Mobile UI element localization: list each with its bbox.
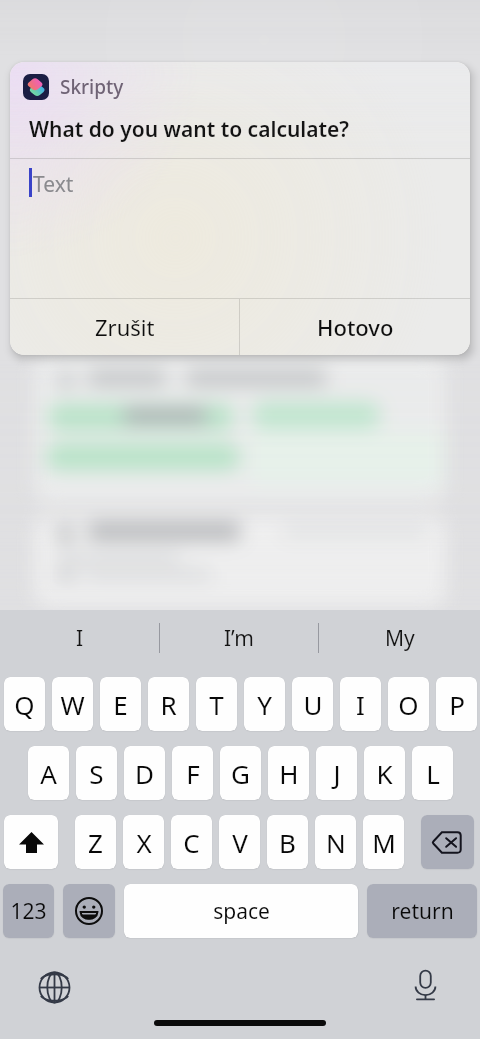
staticText: R xyxy=(160,687,177,722)
button[interactable]: T xyxy=(196,677,237,731)
staticText: L xyxy=(426,756,440,791)
button[interactable]: H xyxy=(268,746,309,800)
button[interactable]: P xyxy=(436,677,477,731)
button[interactable]: Y xyxy=(244,677,285,731)
staticText: W xyxy=(60,687,85,722)
button[interactable]: R xyxy=(148,677,189,731)
button[interactable]: 123 xyxy=(3,884,54,938)
button[interactable]: S xyxy=(76,746,117,800)
button[interactable]: C xyxy=(171,815,212,869)
staticText: I’m xyxy=(224,624,254,653)
button[interactable]: B xyxy=(267,815,308,869)
button[interactable]: K xyxy=(364,746,405,800)
button[interactable]: M xyxy=(363,815,404,869)
staticText: C xyxy=(183,825,200,860)
staticText: E xyxy=(113,687,128,722)
button[interactable]: X xyxy=(123,815,164,869)
button[interactable]: I xyxy=(0,610,159,666)
staticText: U xyxy=(303,687,323,722)
staticText: D xyxy=(135,756,154,791)
button[interactable]: D xyxy=(124,746,165,800)
staticText: F xyxy=(186,756,200,791)
staticText: My xyxy=(385,624,415,653)
staticText: J xyxy=(333,756,341,791)
staticText: I xyxy=(76,624,84,653)
staticText: K xyxy=(376,756,393,791)
button[interactable]: V xyxy=(219,815,260,869)
button[interactable]: L xyxy=(412,746,453,800)
staticText: Y xyxy=(257,687,272,722)
button[interactable]: Dictation xyxy=(409,969,442,1002)
staticText: return xyxy=(391,897,454,926)
button[interactable]: Q xyxy=(4,677,45,731)
staticText: A xyxy=(40,756,57,791)
staticText: Hotovo xyxy=(317,312,394,342)
staticText: Text xyxy=(33,170,74,199)
staticText: H xyxy=(279,756,299,791)
button[interactable]: N xyxy=(315,815,356,869)
button[interactable]: Change keyboard xyxy=(38,971,71,1004)
button[interactable]: Z xyxy=(75,815,116,869)
button[interactable]: I xyxy=(340,677,381,731)
button[interactable]: space xyxy=(124,884,358,938)
button[interactable]: F xyxy=(172,746,213,800)
staticText: N xyxy=(326,825,346,860)
button[interactable]: J xyxy=(316,746,357,800)
button[interactable]: Zrušit xyxy=(10,299,239,355)
staticText: G xyxy=(231,756,250,791)
staticText: I xyxy=(356,687,365,722)
staticText: T xyxy=(209,687,224,722)
button[interactable]: My xyxy=(319,610,480,666)
staticText: space xyxy=(213,897,270,926)
button[interactable]: U xyxy=(292,677,333,731)
staticText: 123 xyxy=(10,897,47,926)
staticText: Q xyxy=(14,687,35,722)
button[interactable]: G xyxy=(220,746,261,800)
button[interactable]: Emoji xyxy=(63,884,115,938)
staticText: Skripty xyxy=(60,74,124,100)
staticText: M xyxy=(372,825,396,860)
button[interactable]: Hotovo xyxy=(240,299,470,355)
staticText: S xyxy=(89,756,104,791)
staticText: O xyxy=(398,687,419,722)
button[interactable]: E xyxy=(100,677,141,731)
staticText: B xyxy=(279,825,296,860)
button[interactable]: Backspace xyxy=(421,815,474,869)
button[interactable]: return xyxy=(367,884,477,938)
button[interactable]: O xyxy=(388,677,429,731)
staticText: V xyxy=(232,825,248,860)
button[interactable]: Shift xyxy=(4,815,58,869)
staticText: Z xyxy=(88,825,103,860)
staticText: Zrušit xyxy=(95,312,155,342)
button[interactable]: W xyxy=(52,677,93,731)
staticText: What do you want to calculate? xyxy=(29,115,350,144)
staticText: X xyxy=(136,825,152,860)
button[interactable]: A xyxy=(28,746,69,800)
button[interactable]: I’m xyxy=(160,610,318,666)
staticText: P xyxy=(449,687,465,722)
